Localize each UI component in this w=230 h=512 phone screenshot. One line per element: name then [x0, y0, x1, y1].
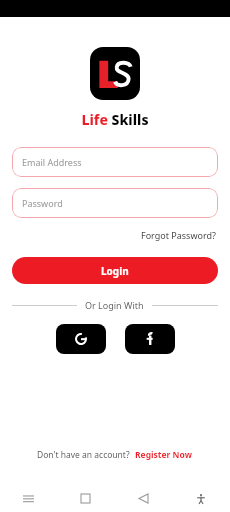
button[interactable]: Recent apps: [0, 485, 57, 512]
button[interactable]: Accessibility: [172, 485, 230, 512]
staticText: Register Now: [135, 449, 192, 461]
button[interactable]: Email Address: [12, 147, 218, 177]
button[interactable]: Sign in with Google: [56, 324, 106, 354]
button[interactable]: Home: [57, 485, 114, 512]
staticText: Login: [101, 264, 129, 278]
staticText: Life Skills: [81, 110, 149, 129]
button[interactable]: Forgot Password?: [139, 227, 218, 243]
staticText: Forgot Password?: [141, 229, 216, 241]
button[interactable]: Sign in with Facebook: [125, 324, 175, 354]
staticText: Don't have an account?: [37, 449, 130, 461]
button[interactable]: Password: [12, 188, 218, 218]
staticText: Or Login With: [85, 299, 144, 311]
button[interactable]: Login: [12, 257, 218, 284]
button[interactable]: Back: [114, 485, 172, 512]
staticText: Email Address: [22, 156, 82, 168]
button[interactable]: Register Now: [134, 447, 193, 463]
staticText: Password: [22, 197, 63, 209]
